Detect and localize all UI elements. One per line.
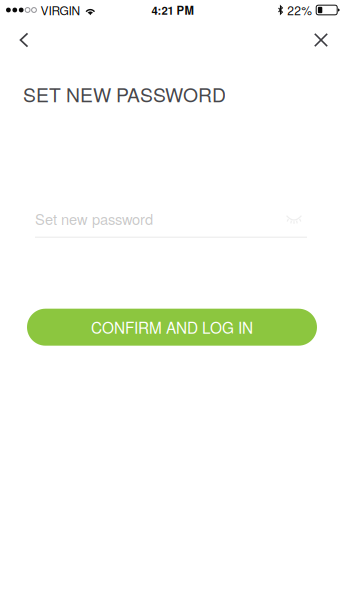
staticText: 22% xyxy=(287,1,312,19)
button[interactable]: Back xyxy=(0,20,48,60)
staticText: Set new password xyxy=(35,208,153,229)
staticText: CONFIRM AND LOG IN xyxy=(91,316,253,338)
button[interactable]: Close xyxy=(297,20,345,60)
button[interactable]: CONFIRM AND LOG IN xyxy=(27,309,317,346)
staticText: 4:21 PM xyxy=(151,2,193,18)
staticText: SET NEW PASSWORD xyxy=(23,80,226,108)
button[interactable]: Show password xyxy=(281,210,307,228)
staticText: VIRGIN xyxy=(40,1,80,19)
